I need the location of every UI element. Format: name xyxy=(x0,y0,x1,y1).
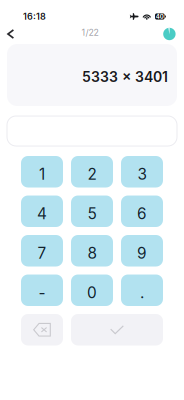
button[interactable]: 8 xyxy=(71,235,113,266)
staticText: 2 xyxy=(87,165,96,184)
staticText: 3 xyxy=(137,165,146,184)
staticText: 40 xyxy=(156,13,164,20)
staticText: 16:18 xyxy=(23,11,46,22)
button[interactable]: 2 xyxy=(71,156,113,187)
staticText: 5333 × 3401 xyxy=(82,68,168,85)
button[interactable]: . xyxy=(121,274,163,306)
button[interactable]: 3 xyxy=(121,156,163,187)
button[interactable]: 9 xyxy=(121,235,163,266)
staticText: 6 xyxy=(137,204,147,223)
staticText: 9 xyxy=(137,244,147,263)
button[interactable]: - xyxy=(21,274,63,306)
button[interactable]: Delete xyxy=(21,314,63,345)
button[interactable]: 7 xyxy=(21,235,63,266)
staticText: . xyxy=(140,283,144,302)
button[interactable]: Timer xyxy=(154,24,184,44)
button[interactable]: 4 xyxy=(21,195,63,227)
button[interactable]: 0 xyxy=(71,274,113,306)
button[interactable]: 6 xyxy=(121,195,163,227)
button[interactable]: 5 xyxy=(71,195,113,227)
staticText: - xyxy=(38,283,45,302)
button[interactable]: 1 xyxy=(21,156,63,187)
staticText: 0 xyxy=(87,283,97,302)
staticText: 8 xyxy=(87,244,96,263)
staticText: 5 xyxy=(87,204,96,223)
staticText: 4 xyxy=(37,204,47,223)
staticText: 1 xyxy=(39,165,45,184)
staticText: 1/22 xyxy=(81,27,98,38)
staticText: 7 xyxy=(37,244,46,263)
button[interactable]: Back xyxy=(0,24,23,44)
button[interactable]: Submit answer xyxy=(71,314,163,345)
